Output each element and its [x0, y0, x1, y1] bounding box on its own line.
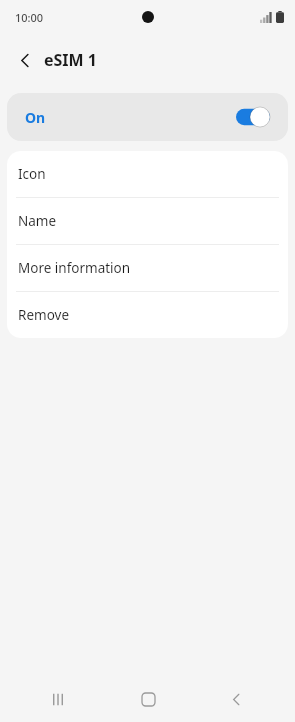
button[interactable]: Remove: [7, 292, 288, 338]
staticText: Remove: [18, 306, 70, 324]
button[interactable]: Back: [8, 43, 42, 77]
button[interactable]: Name: [7, 198, 288, 244]
staticText: More information: [18, 259, 131, 277]
staticText: eSIM 1: [44, 49, 97, 71]
button[interactable]: Recents: [29, 679, 89, 719]
button[interactable]: Home: [118, 679, 178, 719]
button[interactable]: Icon: [7, 151, 288, 197]
staticText: Name: [18, 212, 57, 230]
button[interactable]: More information: [7, 245, 288, 291]
staticText: On: [25, 108, 46, 127]
button[interactable]: Back: [206, 679, 266, 719]
button[interactable]: On: [7, 93, 288, 141]
staticText: Icon: [18, 165, 46, 183]
staticText: 10:00: [15, 10, 44, 25]
